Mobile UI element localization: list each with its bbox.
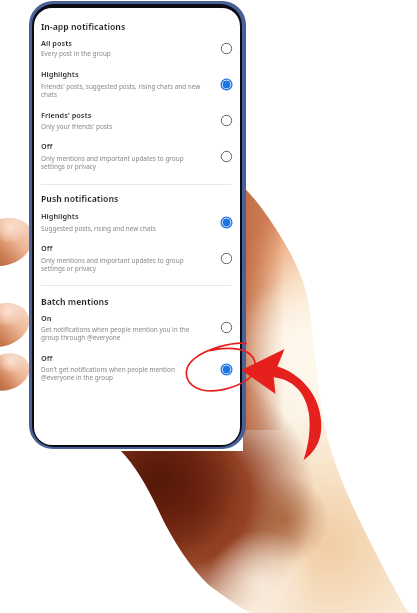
button[interactable]: Option [215,316,237,338]
button[interactable]: Option [215,37,237,59]
staticText: Off [41,141,53,151]
button[interactable]: Option [215,247,237,269]
button[interactable]: Option [215,109,237,131]
staticText: Batch mentions [41,296,109,308]
button[interactable]: Selected option [215,358,237,380]
staticText: Highlights [41,211,79,221]
staticText: All posts [41,38,72,48]
staticText: Only mentions and important updates to g… [41,154,201,171]
staticText: Every post in the group [41,49,111,58]
staticText: Friends' posts [41,110,92,120]
staticText: On [41,313,52,323]
button[interactable]: Selected option [215,211,237,233]
staticText: Don't get notifications when people ment… [41,365,196,382]
staticText: Get notifications when people mention yo… [41,325,201,342]
staticText: Highlights [41,69,79,79]
staticText: Off [41,243,53,253]
staticText: Friends' posts, suggested posts, rising … [41,82,201,99]
staticText: In-app notifications [41,21,126,33]
staticText: Only your friends' posts [41,122,113,131]
staticText: Push notifications [41,193,119,205]
staticText: Off [41,353,53,363]
staticText: Only mentions and important updates to g… [41,256,201,273]
button[interactable]: Option [215,145,237,167]
staticText: Suggested posts, rising and new chats [41,224,156,233]
button[interactable]: Selected option [215,73,237,95]
